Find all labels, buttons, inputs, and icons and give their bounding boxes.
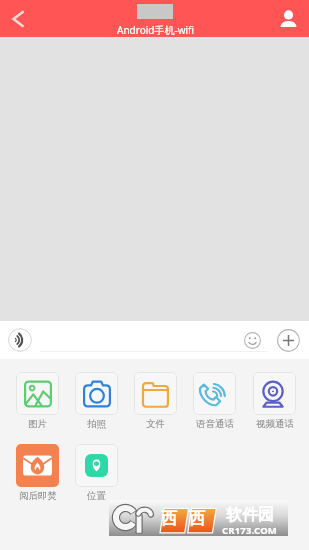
staticText: 软件园	[226, 505, 274, 525]
button[interactable]: Back	[0, 0, 38, 37]
button[interactable]	[16, 372, 59, 415]
button[interactable]	[16, 444, 59, 487]
button[interactable]: Emoji	[241, 329, 263, 351]
button[interactable]: Profile	[273, 0, 309, 37]
staticText: 拍照	[87, 418, 106, 430]
staticText: 图片	[28, 418, 47, 430]
staticText: Android手机-wifi	[117, 23, 195, 37]
staticText: 西	[161, 509, 177, 529]
button[interactable]	[193, 372, 236, 415]
button[interactable]: More options	[276, 328, 300, 352]
staticText: 语音通话	[196, 418, 234, 430]
button[interactable]	[253, 372, 296, 415]
staticText: 文件	[146, 418, 165, 430]
staticText: 视频通话	[256, 418, 294, 430]
button[interactable]	[75, 372, 118, 415]
staticText: 位置	[87, 490, 106, 502]
button[interactable]	[134, 372, 177, 415]
staticText: 阅后即焚	[19, 490, 57, 502]
button[interactable]	[75, 444, 118, 487]
staticText: CR173.COM	[222, 524, 278, 537]
staticText: 西	[189, 509, 205, 529]
button[interactable]: Voice input	[8, 328, 32, 352]
